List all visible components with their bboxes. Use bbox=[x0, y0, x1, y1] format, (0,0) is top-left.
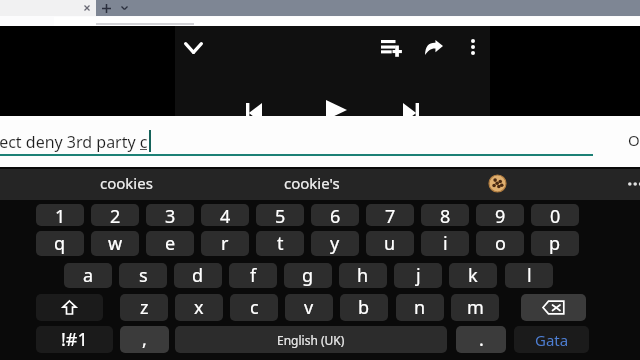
button[interactable]: c bbox=[230, 294, 278, 321]
button[interactable]: More options bbox=[459, 33, 487, 61]
button[interactable]: s bbox=[119, 263, 167, 288]
staticText: e bbox=[165, 231, 176, 256]
button[interactable]: w bbox=[91, 231, 139, 256]
staticText: u bbox=[384, 231, 396, 256]
staticText: , bbox=[142, 327, 147, 352]
staticText: a bbox=[83, 263, 94, 288]
button[interactable]: Tab menu bbox=[116, 0, 132, 16]
staticText: elect deny 3rd party c bbox=[0, 131, 148, 153]
button[interactable]: a bbox=[64, 263, 112, 288]
staticText: i bbox=[443, 231, 448, 256]
staticText: . bbox=[479, 327, 484, 352]
staticText: k bbox=[468, 263, 478, 288]
staticText: y bbox=[330, 231, 340, 256]
button[interactable]: o bbox=[476, 231, 524, 256]
button[interactable]: z bbox=[120, 294, 168, 321]
staticText: z bbox=[140, 295, 149, 320]
staticText: b bbox=[358, 295, 370, 320]
staticText: English (UK) bbox=[277, 332, 345, 348]
button[interactable]: g bbox=[284, 263, 332, 288]
staticText: 0 bbox=[550, 204, 561, 226]
staticText: 8 bbox=[440, 204, 451, 226]
button[interactable]: b bbox=[340, 294, 388, 321]
button[interactable]: d bbox=[174, 263, 222, 288]
button[interactable]: English (UK) bbox=[175, 326, 447, 353]
staticText: 6 bbox=[330, 204, 341, 226]
staticText: cookies bbox=[100, 173, 153, 193]
button[interactable]: v bbox=[285, 294, 333, 321]
staticText: d bbox=[192, 263, 204, 288]
button[interactable]: i bbox=[421, 231, 469, 256]
button[interactable]: !#1 bbox=[36, 326, 113, 353]
button[interactable]: 4 bbox=[201, 204, 249, 226]
button[interactable]: Cookie emoji bbox=[430, 166, 564, 200]
button[interactable]: m bbox=[451, 294, 499, 321]
button[interactable]: x bbox=[175, 294, 223, 321]
button[interactable]: u bbox=[366, 231, 414, 256]
button[interactable]: q bbox=[36, 231, 84, 256]
button[interactable]: f bbox=[229, 263, 277, 288]
staticText: 3 bbox=[165, 204, 176, 226]
button[interactable]: Share bbox=[420, 34, 447, 61]
button[interactable]: 1 bbox=[36, 204, 84, 226]
button[interactable]: h bbox=[339, 263, 387, 288]
staticText: j bbox=[416, 263, 421, 288]
button[interactable]: More suggestions bbox=[612, 168, 640, 198]
staticText: h bbox=[357, 263, 369, 288]
button[interactable]: t bbox=[256, 231, 304, 256]
button[interactable]: 3 bbox=[146, 204, 194, 226]
button[interactable]: Gata bbox=[514, 326, 589, 353]
button[interactable]: Collapse player bbox=[179, 33, 208, 62]
staticText: l bbox=[527, 263, 532, 288]
staticText: w bbox=[108, 231, 123, 256]
staticText: n bbox=[414, 295, 426, 320]
button[interactable]: j bbox=[394, 263, 442, 288]
button[interactable]: , bbox=[120, 326, 169, 353]
staticText: p bbox=[549, 231, 561, 256]
button[interactable]: . bbox=[456, 326, 506, 353]
button[interactable]: New tab bbox=[98, 0, 114, 16]
staticText: f bbox=[250, 263, 257, 288]
button[interactable]: 5 bbox=[256, 204, 304, 226]
staticText: s bbox=[139, 263, 148, 288]
staticText: 7 bbox=[385, 204, 396, 226]
staticText: g bbox=[302, 263, 314, 288]
button[interactable]: 7 bbox=[366, 204, 414, 226]
button[interactable]: 0 bbox=[531, 204, 579, 226]
button[interactable]: cookies bbox=[56, 166, 196, 200]
staticText: r bbox=[221, 231, 229, 256]
staticText: Gata bbox=[535, 330, 569, 350]
button[interactable]: Close tab bbox=[79, 0, 95, 16]
button[interactable]: l bbox=[505, 263, 553, 288]
button[interactable]: k bbox=[449, 263, 497, 288]
button[interactable]: y bbox=[311, 231, 359, 256]
staticText: !#1 bbox=[61, 327, 88, 352]
staticText: 1 bbox=[55, 204, 66, 226]
button[interactable]: 9 bbox=[476, 204, 524, 226]
button[interactable]: Shift bbox=[36, 294, 103, 321]
button[interactable]: 2 bbox=[91, 204, 139, 226]
staticText: t bbox=[277, 231, 284, 256]
button[interactable]: Backspace bbox=[521, 294, 586, 321]
button[interactable]: r bbox=[201, 231, 249, 256]
staticText: 9 bbox=[495, 204, 506, 226]
staticText: cookie's bbox=[284, 173, 340, 193]
staticText: o bbox=[495, 231, 506, 256]
staticText: 2 bbox=[110, 204, 121, 226]
button[interactable]: 6 bbox=[311, 204, 359, 226]
staticText: c bbox=[250, 295, 259, 320]
staticText: 4 bbox=[220, 204, 231, 226]
staticText: 5 bbox=[275, 204, 286, 226]
button[interactable]: cookie's bbox=[242, 166, 382, 200]
button[interactable]: e bbox=[146, 231, 194, 256]
button[interactable]: Save to playlist bbox=[378, 34, 405, 63]
staticText: q bbox=[54, 231, 66, 256]
button[interactable]: n bbox=[396, 294, 444, 321]
staticText: m bbox=[467, 295, 484, 320]
staticText: v bbox=[304, 295, 314, 320]
button[interactable]: OK bbox=[615, 127, 640, 152]
staticText: OK bbox=[628, 130, 640, 150]
button[interactable]: 8 bbox=[421, 204, 469, 226]
button[interactable]: p bbox=[531, 231, 579, 256]
staticText: x bbox=[194, 295, 204, 320]
